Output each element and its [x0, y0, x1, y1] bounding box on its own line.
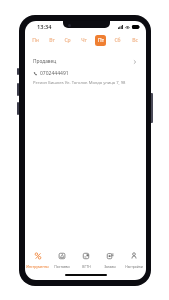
button[interactable]: Поставки: [50, 250, 74, 270]
staticText: Регион Бишкек Ул. Тоголок Молдо улица 7,…: [33, 80, 126, 86]
button[interactable]: Чт: [78, 35, 89, 46]
staticText: Поставки: [54, 264, 70, 269]
staticText: Инструменты: [26, 264, 49, 269]
button[interactable]: Настройки: [122, 250, 146, 270]
button[interactable]: Заказы: [98, 250, 122, 270]
staticText: Пн: [32, 37, 39, 44]
staticText: Сб: [114, 37, 121, 44]
staticText: 13:34: [37, 23, 52, 31]
staticText: ВГТН: [82, 264, 91, 269]
staticText: Заказы: [104, 264, 116, 269]
button[interactable]: Вс: [129, 35, 140, 46]
button[interactable]: Пт: [95, 35, 106, 46]
button[interactable]: Инструменты: [25, 250, 50, 270]
button[interactable]: Продавец: [33, 56, 137, 67]
staticText: Чт: [81, 37, 87, 44]
button[interactable]: Вт: [46, 35, 57, 46]
staticText: 0702444491: [40, 70, 69, 77]
staticText: Вс: [132, 37, 138, 44]
button[interactable]: 0702444491: [33, 68, 138, 78]
other: Открыть: [133, 60, 137, 64]
staticText: Ср: [64, 37, 71, 44]
button[interactable]: Сб: [112, 35, 123, 46]
button[interactable]: Пн: [30, 35, 41, 46]
staticText: Продавец: [33, 58, 57, 65]
staticText: Вт: [49, 37, 55, 44]
button[interactable]: Ср: [62, 35, 73, 46]
staticText: Настройки: [125, 264, 143, 269]
staticText: Пт: [98, 37, 104, 44]
button[interactable]: ВГТН: [74, 250, 98, 270]
